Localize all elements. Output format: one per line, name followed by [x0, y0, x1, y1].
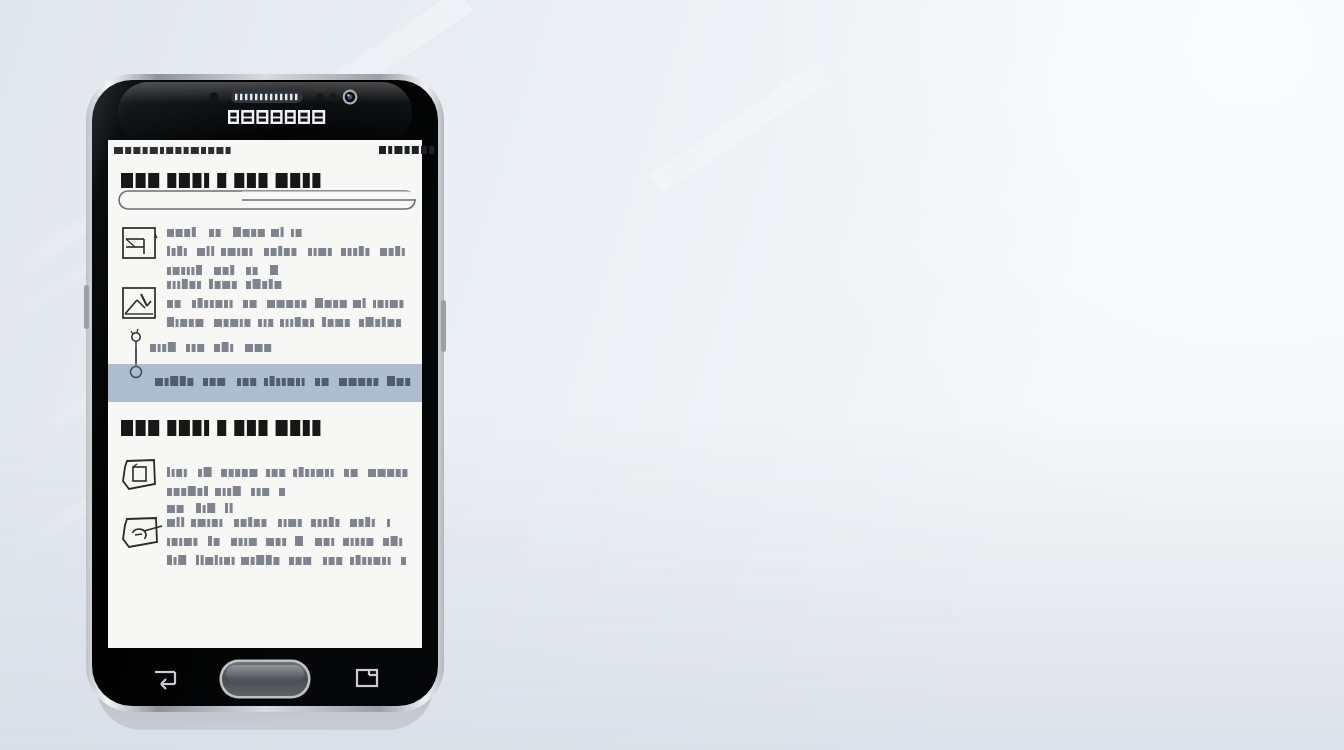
button[interactable]: Manage photos and media	[108, 278, 422, 336]
button[interactable]: Back up your Wi-Fi settings	[108, 218, 422, 278]
button[interactable]: Home	[225, 658, 311, 698]
button[interactable]: Sync settings	[108, 336, 422, 364]
button[interactable]: How to cache and model	[116, 168, 416, 214]
button[interactable]: View system backup history	[108, 514, 422, 574]
button[interactable]: Back	[350, 662, 390, 696]
button[interactable]: System overview details	[108, 452, 422, 514]
button[interactable]: Connect to a nearby phone	[108, 364, 422, 402]
button[interactable]: Status bar	[108, 140, 422, 164]
button[interactable]: View system backup	[116, 414, 416, 442]
button[interactable]: Recent apps	[145, 662, 185, 696]
